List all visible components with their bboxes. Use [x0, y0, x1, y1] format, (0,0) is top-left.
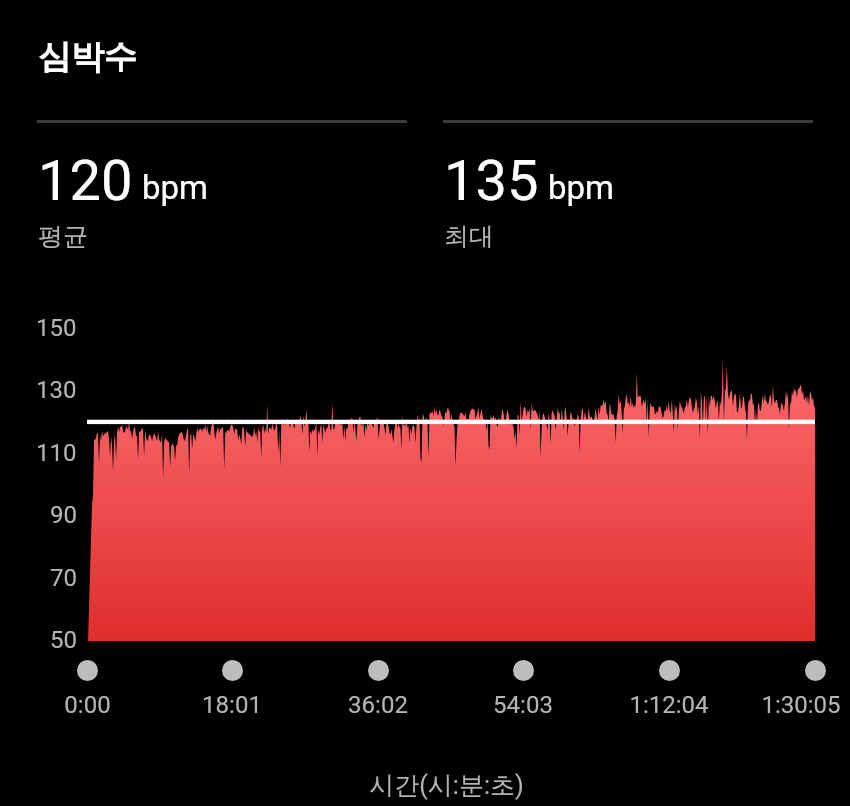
- staticText: 110: [36, 439, 77, 467]
- button[interactable]: Heart rate graph: [75, 310, 820, 655]
- staticText: 130: [36, 376, 77, 404]
- button[interactable]: Time marker 1:30:05: [805, 660, 826, 681]
- staticText: 150: [36, 314, 77, 342]
- staticText: 54:03: [493, 691, 553, 719]
- staticText: 90: [50, 501, 77, 529]
- button[interactable]: Time marker 54:03: [513, 660, 534, 681]
- button[interactable]: Time marker 0:00: [77, 660, 98, 681]
- button[interactable]: 135: [443, 114, 813, 254]
- staticText: 70: [50, 564, 77, 592]
- staticText: 36:02: [348, 691, 408, 719]
- staticText: 120: [38, 148, 133, 214]
- staticText: 최대: [444, 221, 494, 252]
- staticText: 시간(시:분:초): [369, 770, 524, 801]
- staticText: 1:30:05: [761, 691, 841, 719]
- button[interactable]: 120: [37, 114, 407, 254]
- button[interactable]: Time marker 18:01: [222, 660, 243, 681]
- staticText: 심박수: [38, 36, 137, 78]
- staticText: 평균: [38, 221, 88, 252]
- staticText: 1:12:04: [629, 691, 709, 719]
- button[interactable]: Time marker 36:02: [368, 660, 389, 681]
- staticText: 18:01: [202, 691, 262, 719]
- staticText: 0:00: [64, 691, 111, 719]
- button[interactable]: Time marker 1:12:04: [659, 660, 680, 681]
- staticText: bpm: [548, 168, 614, 207]
- staticText: 135: [444, 148, 539, 214]
- staticText: bpm: [142, 168, 208, 207]
- staticText: 50: [50, 626, 77, 654]
